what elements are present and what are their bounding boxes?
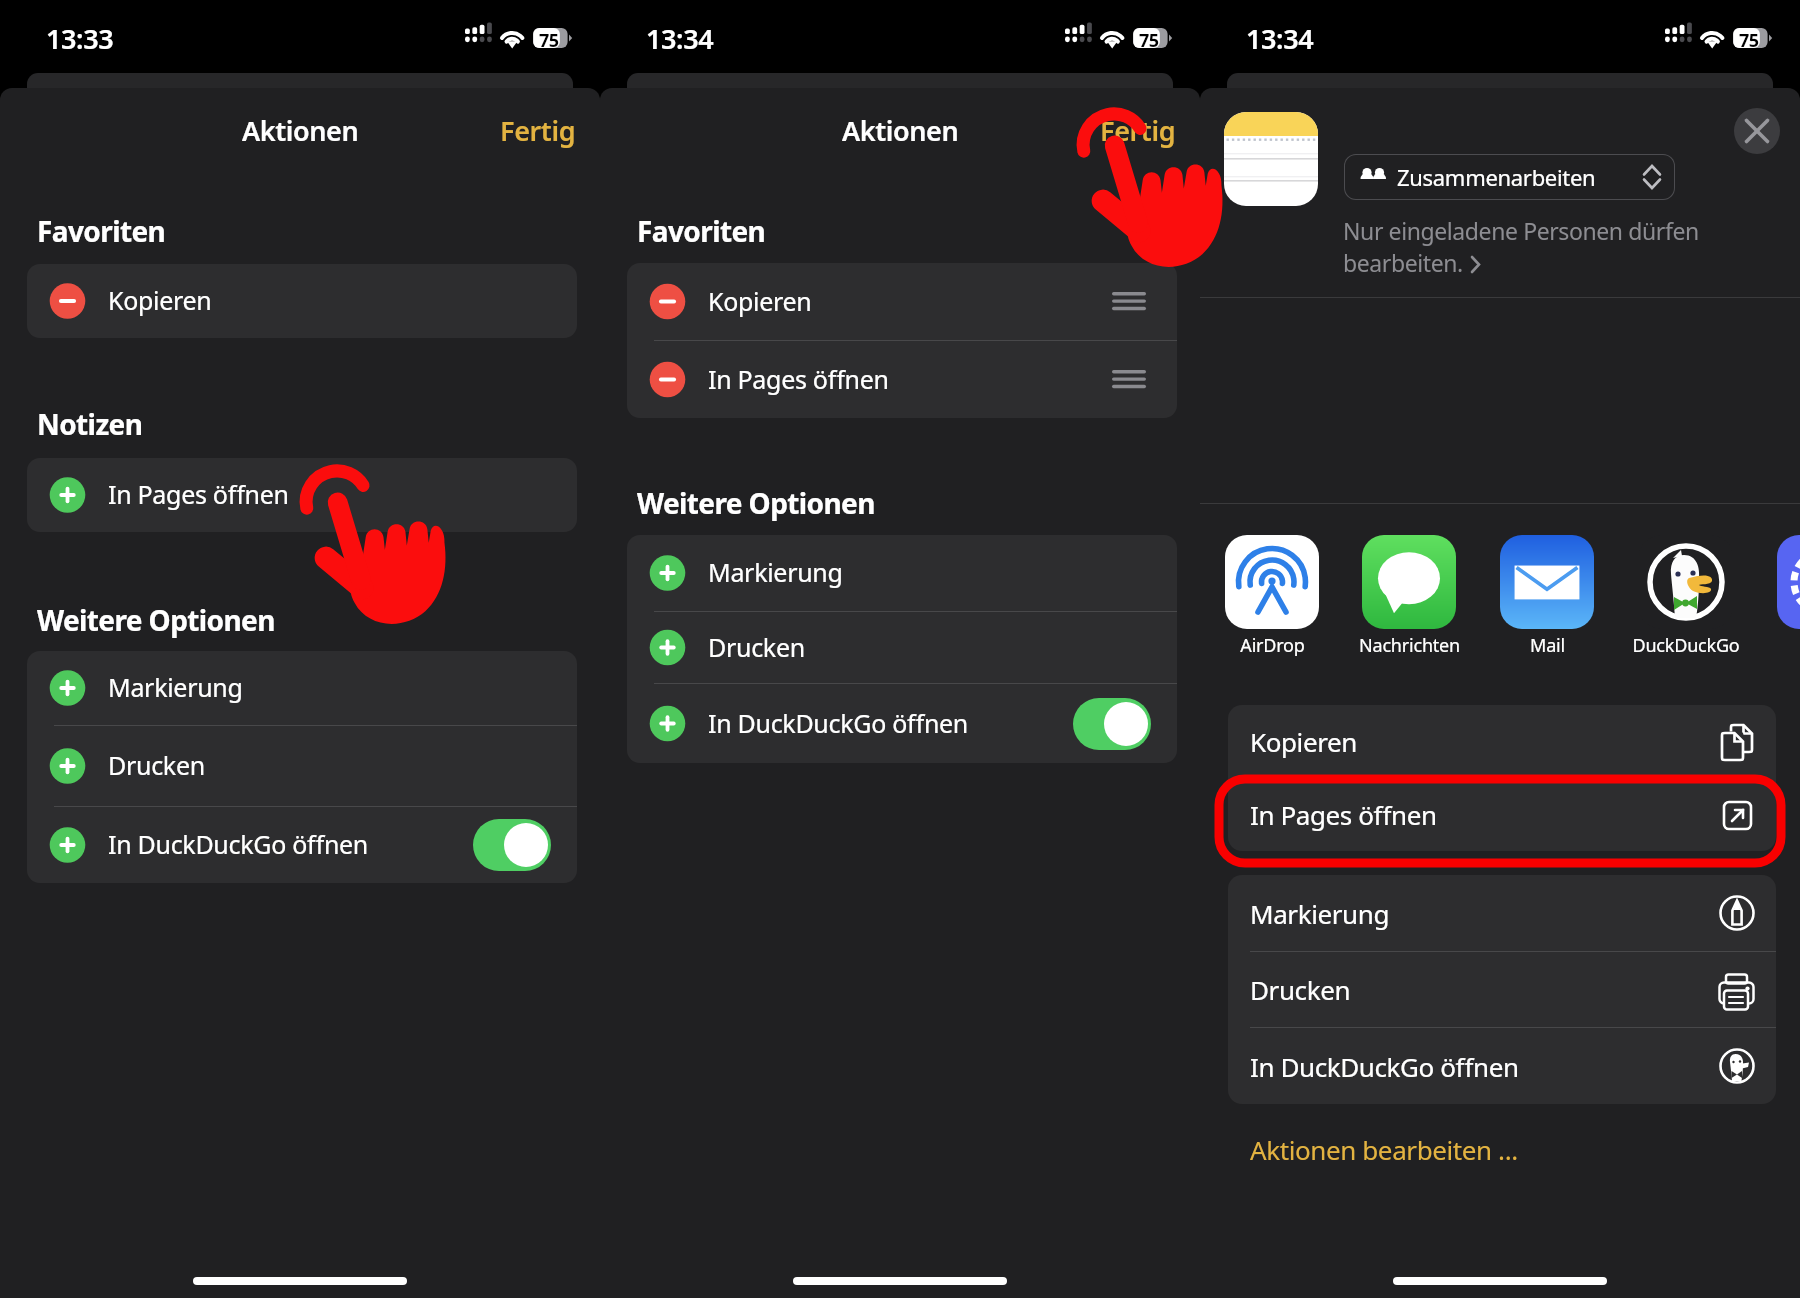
staticText: In Pages öffnen	[1250, 797, 1437, 832]
button[interactable]: Kopieren	[627, 263, 1177, 340]
button[interactable]: In Pages öffnen	[27, 458, 577, 532]
staticText: In DuckDuckGo öffnen	[108, 827, 368, 861]
staticText: Fertig	[1100, 112, 1176, 149]
button[interactable]: Drucken	[627, 612, 1177, 683]
button[interactable]: Share via AirDrop	[1186, 535, 1358, 629]
staticText: 75	[539, 28, 559, 53]
staticText: Zusammenarbeiten	[1397, 162, 1596, 192]
button[interactable]: Fertig	[1088, 102, 1188, 159]
button[interactable]: Share via Signal	[1738, 535, 1800, 629]
button[interactable]: In DuckDuckGo öffnen	[627, 684, 1177, 763]
button[interactable]: Toggle on	[1073, 698, 1151, 750]
staticText: Notizen	[37, 405, 143, 443]
staticText: 13:34	[646, 20, 714, 57]
button[interactable]: Drucken	[27, 726, 577, 806]
button[interactable]: Kopieren	[27, 264, 577, 338]
button[interactable]: bearbeiten.	[1343, 247, 1482, 278]
button[interactable]: Aktionen bearbeiten ...	[1246, 1128, 1522, 1171]
staticText: In DuckDuckGo öffnen	[708, 706, 968, 740]
staticText: In Pages öffnen	[708, 362, 889, 396]
staticText: In DuckDuckGo öffnen	[1250, 1049, 1519, 1084]
staticText: Drucken	[108, 748, 205, 782]
staticText: Drucken	[1250, 972, 1351, 1007]
staticText: 75	[1739, 28, 1759, 53]
button[interactable]: Share via Nachrichten	[1323, 535, 1495, 629]
button[interactable]: Zusammenarbeiten	[1344, 154, 1675, 200]
button[interactable]: Fertig	[488, 102, 588, 159]
staticText: Aktionen	[242, 112, 359, 149]
staticText: DuckDuckGo	[1632, 633, 1740, 658]
staticText: In Pages öffnen	[108, 477, 289, 511]
button[interactable]: Drucken	[1228, 952, 1776, 1027]
staticText: Markierung	[108, 670, 243, 704]
button[interactable]: Share via Mail	[1461, 535, 1633, 629]
staticText: Aktionen	[842, 112, 959, 149]
staticText: Markierung	[1250, 896, 1390, 931]
button[interactable]: Toggle on	[473, 819, 551, 871]
button[interactable]: In DuckDuckGo öffnen	[27, 807, 577, 883]
button[interactable]: Close	[1734, 108, 1780, 154]
staticText: Drucken	[708, 630, 805, 664]
button[interactable]: Markierung	[627, 535, 1177, 611]
staticText: Favoriten	[637, 212, 766, 250]
staticText: Favoriten	[37, 212, 166, 250]
staticText: 13:33	[46, 20, 114, 57]
staticText: Kopieren	[108, 283, 212, 317]
staticText: 75	[1139, 28, 1159, 53]
staticText: Aktionen bearbeiten ...	[1250, 1132, 1518, 1167]
staticText: Weitere Optionen	[37, 601, 275, 639]
button[interactable]: Kopieren	[1228, 705, 1776, 778]
staticText: Markierung	[708, 555, 843, 589]
staticText: 13:34	[1246, 20, 1314, 57]
button[interactable]: In Pages öffnen	[627, 341, 1177, 418]
button[interactable]: In Pages öffnen	[1228, 778, 1776, 851]
staticText: Kopieren	[1250, 724, 1357, 759]
staticText: Mail	[1530, 633, 1565, 658]
staticText: Fertig	[500, 112, 576, 149]
staticText: Weitere Optionen	[637, 484, 875, 522]
button[interactable]: In DuckDuckGo öffnen	[1228, 1028, 1776, 1104]
button[interactable]: Markierung	[1228, 875, 1776, 951]
staticText: Kopieren	[708, 284, 812, 318]
staticText: bearbeiten.	[1343, 247, 1463, 278]
staticText: AirDrop	[1240, 633, 1305, 658]
staticText: Nur eingeladene Personen dürfen	[1343, 215, 1699, 246]
button[interactable]: Share via DuckDuckGo	[1600, 535, 1772, 629]
button[interactable]: Markierung	[27, 651, 577, 725]
staticText: Nachrichten	[1359, 633, 1460, 658]
